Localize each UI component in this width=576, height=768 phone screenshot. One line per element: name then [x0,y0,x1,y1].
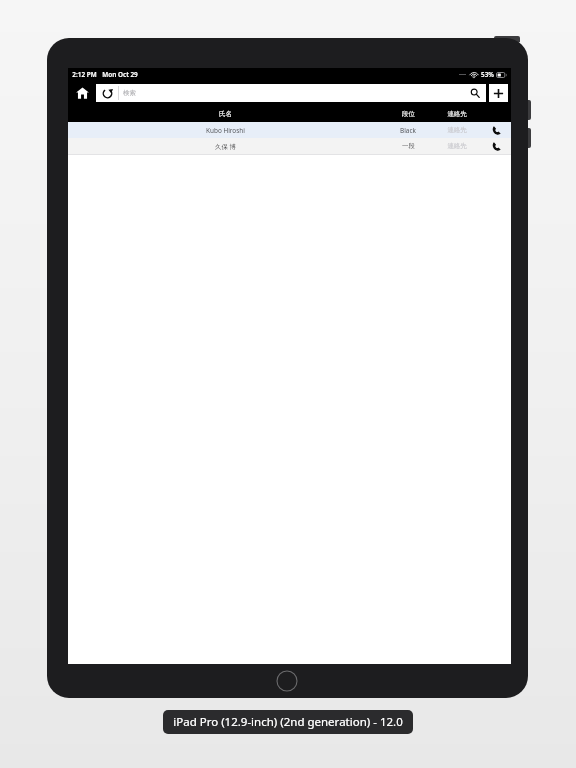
staticText: 検索 [123,89,136,97]
staticText: Mon Oct 29 [102,70,138,79]
staticText: 連絡先 [447,142,467,150]
button[interactable]: Home [68,80,96,106]
button[interactable]: Add [489,84,508,102]
button[interactable]: 久保 博 [68,138,511,154]
staticText: iPad Pro (12.9-inch) (2nd generation) - … [173,714,403,730]
staticText: 久保 博 [215,142,236,151]
staticText: 氏名 [219,110,232,118]
button[interactable]: 段位 [383,106,433,122]
button[interactable]: 連絡先 [433,122,481,138]
button[interactable]: 氏名 [68,106,383,122]
button[interactable]: Call Kubo Hiroshi [481,122,511,138]
button[interactable]: Call 久保 博 [481,138,511,154]
staticText: 段位 [402,110,415,118]
button[interactable]: 連絡先 [433,106,481,122]
staticText: 連絡先 [447,126,467,134]
button[interactable]: 連絡先 [433,138,481,154]
button[interactable]: Home button [276,670,298,692]
staticText: 一段 [402,142,415,150]
staticText: 連絡先 [447,110,467,118]
button[interactable]: 検索 [119,84,464,102]
button[interactable]: Search [464,84,486,102]
button[interactable]: Kubo Hiroshi [68,122,511,138]
staticText: Kubo Hiroshi [206,126,245,135]
staticText: Black [400,126,416,135]
staticText: 53% [481,70,494,79]
staticText: 2:12 PM [72,70,97,79]
button[interactable]: Reload [96,84,118,102]
